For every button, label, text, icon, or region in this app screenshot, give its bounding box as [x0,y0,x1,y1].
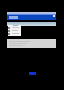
button[interactable] [7,39,56,48]
button[interactable]: More options [7,15,56,20]
button[interactable] [8,25,21,36]
